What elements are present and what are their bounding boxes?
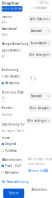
staticText: Tastenkürzel [1, 27, 17, 31]
staticText: Sichern [9, 191, 19, 195]
button[interactable]: Original [1, 142, 16, 146]
button[interactable]: Sichern [3, 189, 24, 198]
button[interactable]: Pixel · Zoll [1, 164, 21, 168]
staticText: Dropbox [1, 0, 18, 6]
staticText: Alle Dateien [30, 17, 48, 21]
button[interactable]: An Schalter [1, 75, 20, 78]
staticText: Aktiv [1, 33, 7, 36]
button[interactable]: Standard [29, 93, 50, 99]
staticText: Grafikkarte [34, 6, 47, 10]
staticText: Alle anzeigen [27, 119, 47, 122]
staticText: Mit Textverarbeitung [1, 180, 28, 184]
button[interactable]: Abbrechen [31, 186, 48, 193]
staticText: Standard [31, 94, 42, 98]
staticText: 1 [30, 77, 32, 80]
staticText: Standard [31, 29, 42, 33]
button[interactable]: Weitere Infos… [28, 169, 49, 173]
staticText: Standard [1, 113, 12, 116]
staticText: Automatisch [31, 41, 47, 45]
button[interactable]: Alle Dateien [29, 16, 50, 22]
button[interactable]: Info [45, 169, 48, 172]
staticText: Eigenschaften [1, 49, 20, 52]
staticText: Vorschau [5, 149, 17, 152]
button[interactable]: Werkseinst. [1, 81, 20, 85]
button[interactable]: Alle anzeigen [29, 51, 50, 58]
staticText: Mit Vorlage drucken [28, 157, 52, 161]
staticText: Ein langer Text fü [1, 129, 24, 133]
staticText: Pixel · Zoll [5, 164, 21, 168]
staticText: Bezeichnung für [1, 123, 24, 126]
staticText: i [46, 168, 47, 172]
staticText: Alt [1, 55, 5, 58]
staticText: 1 [2, 97, 4, 101]
staticText: Original [5, 142, 16, 146]
staticText: Ohne Angabe [29, 106, 49, 110]
staticText: Render [1, 106, 12, 110]
staticText: Millimeter [5, 171, 19, 174]
button[interactable]: Alle anzeigen [26, 117, 50, 124]
staticText: 1 GB frei [36, 1, 49, 4]
staticText: Bedienung [1, 68, 18, 72]
staticText: Menge/Einstellung [1, 42, 28, 46]
staticText: und sichern [28, 162, 45, 166]
button[interactable]: Automatisch [29, 40, 50, 46]
staticText: Alle [1, 21, 7, 24]
button[interactable]: Ohne Angabe [29, 105, 50, 111]
button[interactable]: Millimeter [1, 171, 19, 174]
staticText: Maßeinheiten [1, 158, 21, 162]
staticText: Abbrechen [31, 188, 47, 191]
staticText: Alle anzeigen [29, 53, 49, 56]
staticText: Seiten pro Blatt [1, 91, 23, 94]
staticText: An Schalter [5, 75, 20, 78]
button[interactable]: Vorschau [1, 149, 17, 152]
staticText: Werkseinst. [5, 81, 20, 85]
button[interactable]: Dateien hochladen [1, 6, 22, 11]
button[interactable]: Standard [29, 28, 50, 34]
staticText: Dateien hochladen [0, 7, 25, 10]
staticText: Format [1, 136, 9, 139]
staticText: Dateien [1, 15, 12, 18]
staticText: Weitere Infos… [28, 169, 49, 173]
